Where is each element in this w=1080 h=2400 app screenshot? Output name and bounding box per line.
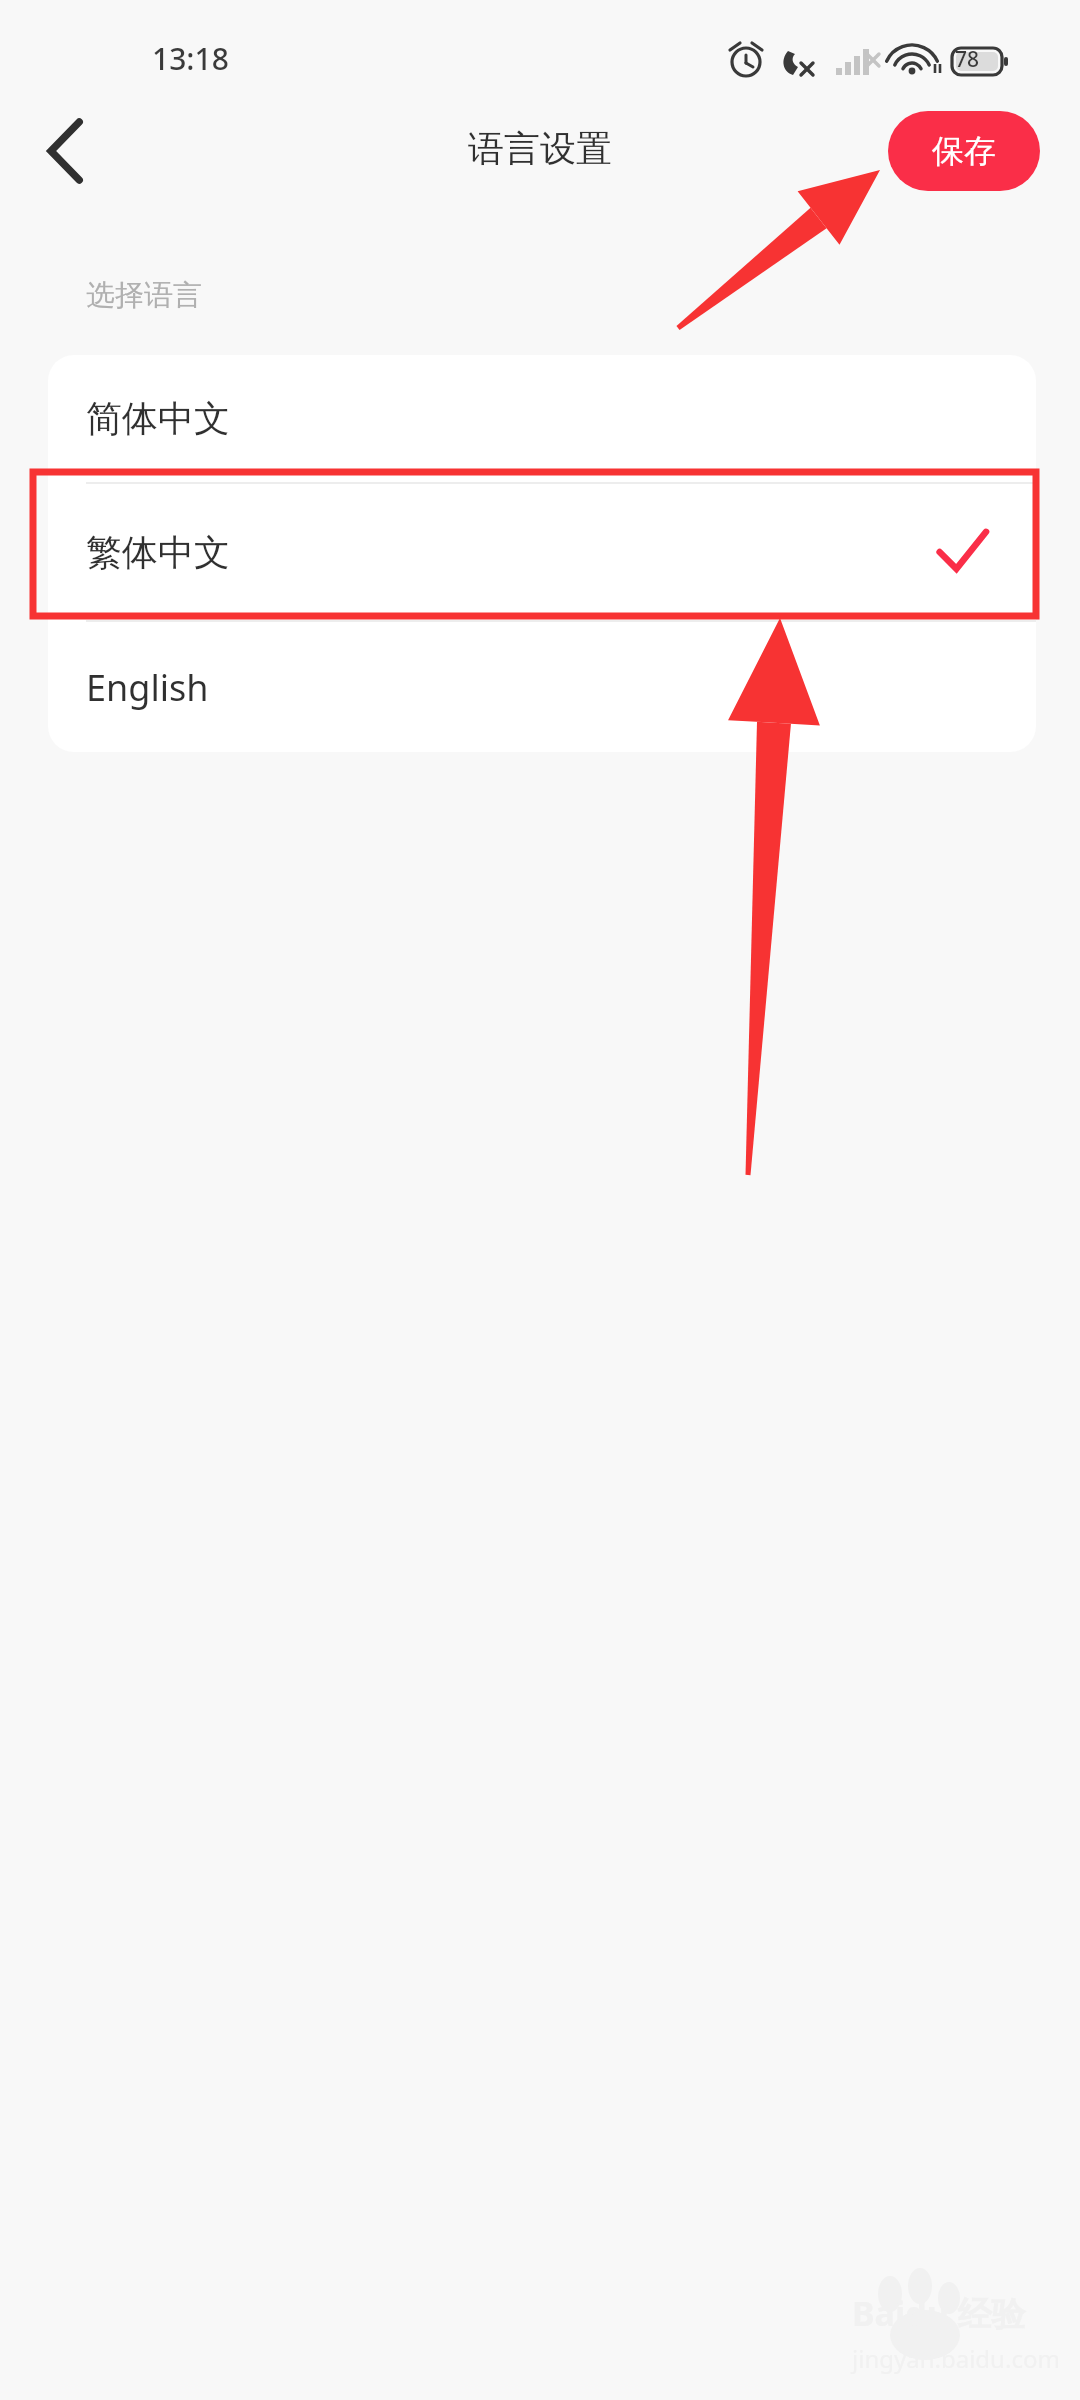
staticText: 选择语言	[86, 277, 202, 314]
button[interactable]: 保存	[888, 111, 1040, 191]
staticText: 78	[955, 45, 980, 74]
staticText: 繁体中文	[86, 530, 230, 575]
staticText: jingyan.baidu.com	[852, 2342, 1060, 2375]
staticText: 语言设置	[0, 126, 1080, 171]
staticText: 13:18	[152, 38, 229, 79]
staticText: 保存	[932, 131, 996, 171]
button[interactable]: Back	[18, 100, 114, 202]
button[interactable]: 简体中文	[48, 355, 1036, 482]
staticText: Baidu 经验	[852, 2290, 1026, 2336]
button[interactable]: 繁体中文	[48, 484, 1036, 620]
button[interactable]: English	[48, 622, 1036, 752]
staticText: English	[86, 663, 209, 712]
staticText: 简体中文	[86, 396, 230, 441]
